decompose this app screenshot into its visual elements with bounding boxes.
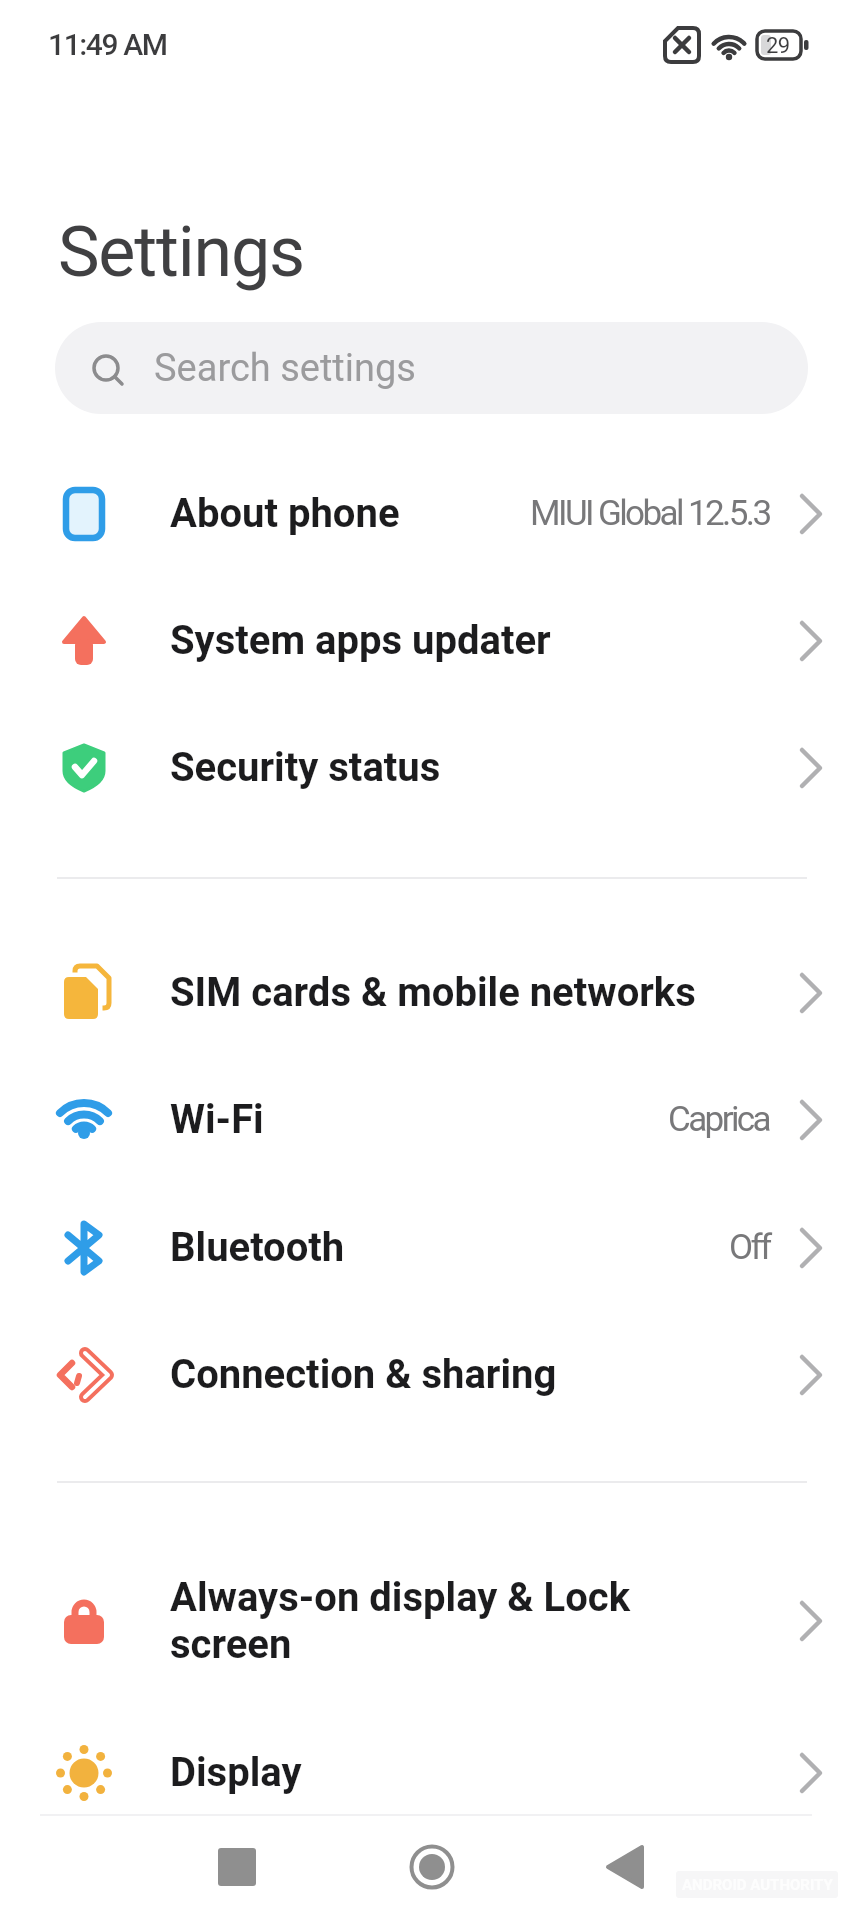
button[interactable]: About phone	[0, 450, 864, 577]
staticText: Wi-Fi	[170, 1096, 264, 1143]
button[interactable]: Security status	[0, 704, 864, 831]
staticText: Connection & sharing	[170, 1351, 557, 1398]
staticText: Off	[729, 1227, 770, 1268]
staticText: Caprica	[668, 1099, 770, 1140]
button[interactable]: Display	[0, 1709, 864, 1836]
staticText: About phone	[170, 490, 400, 537]
staticText: Display	[170, 1749, 302, 1796]
staticText: System apps updater	[170, 617, 551, 664]
staticText: SIM cards & mobile networks	[170, 969, 696, 1016]
staticText: Bluetooth	[170, 1224, 345, 1271]
staticText: Search settings	[154, 346, 416, 391]
staticText: 29	[766, 33, 790, 59]
button[interactable]: System apps updater	[0, 577, 864, 704]
button[interactable]: Search settings	[55, 322, 808, 414]
button[interactable]	[578, 1820, 672, 1914]
button[interactable]: Bluetooth	[0, 1184, 864, 1311]
button[interactable]: Connection & sharing	[0, 1311, 864, 1438]
staticText: 11:49 AM	[48, 27, 167, 62]
staticText: Settings	[58, 211, 304, 293]
staticText: MIUI Global 12.5.3	[530, 493, 770, 534]
button[interactable]: SIM cards & mobile networks	[0, 929, 864, 1056]
staticText: ANDROID AUTHORITY	[682, 1876, 833, 1894]
staticText: Always-on display & Lock screen	[170, 1574, 631, 1668]
button[interactable]	[190, 1820, 284, 1914]
button[interactable]: Wi-Fi	[0, 1056, 864, 1183]
staticText: Security status	[170, 744, 441, 791]
button[interactable]: Always-on display & Lock screen	[0, 1536, 864, 1706]
button[interactable]	[385, 1820, 479, 1914]
